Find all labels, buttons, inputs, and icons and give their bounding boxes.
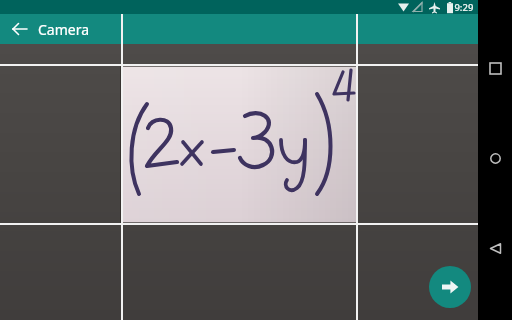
button[interactable]: Navigate up [6,15,34,43]
button[interactable]: Recent apps [478,50,512,86]
button[interactable]: Home [478,140,512,176]
button[interactable]: Back [478,230,512,266]
button[interactable]: Next [429,266,471,308]
staticText: 19:29 [449,1,474,14]
staticText: Camera [38,20,90,39]
